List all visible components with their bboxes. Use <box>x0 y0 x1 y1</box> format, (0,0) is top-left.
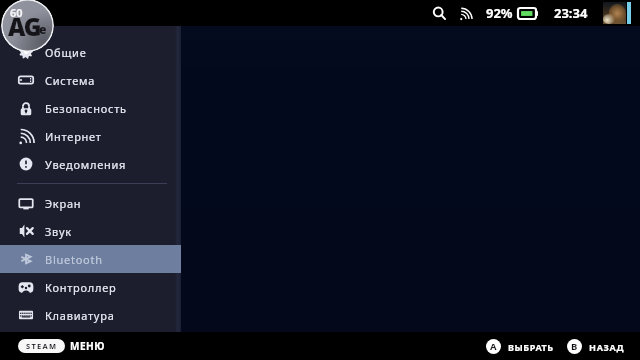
button[interactable]: Звук <box>0 217 181 245</box>
staticText: 60 <box>10 5 23 20</box>
button[interactable]: Уведомления <box>0 150 181 178</box>
staticText: Уведомления <box>45 157 127 172</box>
staticText: Экран <box>45 196 82 211</box>
button[interactable]: Bluetooth <box>0 245 181 273</box>
staticText: Безопасность <box>45 101 127 116</box>
staticText: МЕНЮ <box>70 339 105 353</box>
staticText: Контроллер <box>45 280 117 295</box>
staticText: B <box>571 340 578 353</box>
button[interactable]: Интернет <box>0 122 181 150</box>
button[interactable]: STEAM <box>18 339 105 353</box>
staticText: AG <box>8 10 41 43</box>
button[interactable]: Profile <box>603 2 626 24</box>
button[interactable]: Account <box>1 0 54 52</box>
button[interactable]: Общие <box>0 38 181 66</box>
button[interactable]: Экран <box>0 189 181 217</box>
staticText: ВЫБРАТЬ <box>508 341 554 353</box>
button[interactable]: Search <box>429 3 449 23</box>
button[interactable]: B <box>567 339 625 354</box>
staticText: Интернет <box>45 129 102 144</box>
staticText: A <box>490 340 497 353</box>
button[interactable]: A <box>486 339 554 354</box>
staticText: e <box>39 21 47 37</box>
button[interactable]: Безопасность <box>0 94 181 122</box>
staticText: 92% <box>486 4 513 22</box>
staticText: 23:34 <box>554 4 588 22</box>
button[interactable]: Wi-Fi <box>455 3 475 23</box>
staticText: Клавиатура <box>45 308 115 323</box>
staticText: Bluetooth <box>45 252 103 267</box>
staticText: НАЗАД <box>589 341 625 353</box>
button[interactable]: Клавиатура <box>0 301 181 329</box>
staticText: STEAM <box>26 341 58 351</box>
staticText: Звук <box>45 224 72 239</box>
button[interactable]: Система <box>0 66 181 94</box>
button[interactable]: Контроллер <box>0 273 181 301</box>
staticText: Общие <box>45 45 87 60</box>
staticText: Система <box>45 73 96 88</box>
